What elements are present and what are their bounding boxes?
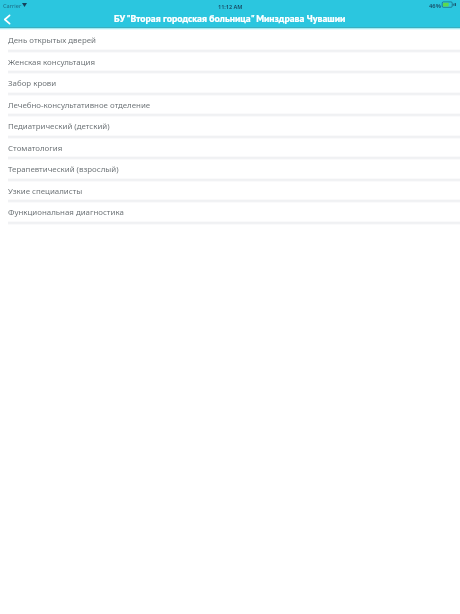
button[interactable]: День открытых дверей xyxy=(0,28,460,50)
button[interactable]: Педиатрический (детский) xyxy=(0,114,460,136)
staticText: Стоматология xyxy=(8,143,63,154)
button[interactable]: Забор крови xyxy=(0,71,460,93)
button[interactable]: Лечебно-консультативное отделение xyxy=(0,93,460,115)
staticText: Лечебно-консультативное отделение xyxy=(8,100,151,111)
button[interactable]: Back xyxy=(0,12,22,28)
staticText: Функциональная диагностика xyxy=(8,207,124,218)
staticText: Узкие специалисты xyxy=(8,186,83,197)
staticText: 46% xyxy=(429,2,441,10)
staticText: Терапевтический (взрослый) xyxy=(8,164,119,175)
staticText: День открытых дверей xyxy=(8,35,96,46)
button[interactable]: Стоматология xyxy=(0,136,460,158)
staticText: Carrier xyxy=(3,2,22,10)
staticText: Забор крови xyxy=(8,78,57,89)
button[interactable]: Функциональная диагностика xyxy=(0,200,460,222)
button[interactable]: Узкие специалисты xyxy=(0,179,460,201)
button[interactable]: Терапевтический (взрослый) xyxy=(0,157,460,179)
staticText: Педиатрический (детский) xyxy=(8,121,110,132)
button[interactable]: Женская консультация xyxy=(0,50,460,72)
staticText: БУ "Вторая городская больница" Минздрава… xyxy=(114,12,346,25)
staticText: 11:12 AM xyxy=(218,3,243,10)
staticText: Женская консультация xyxy=(8,57,95,68)
